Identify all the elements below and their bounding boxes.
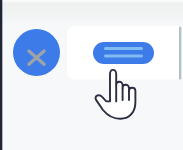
button[interactable]: Close [13,29,60,76]
button[interactable]: Menu [93,42,154,64]
